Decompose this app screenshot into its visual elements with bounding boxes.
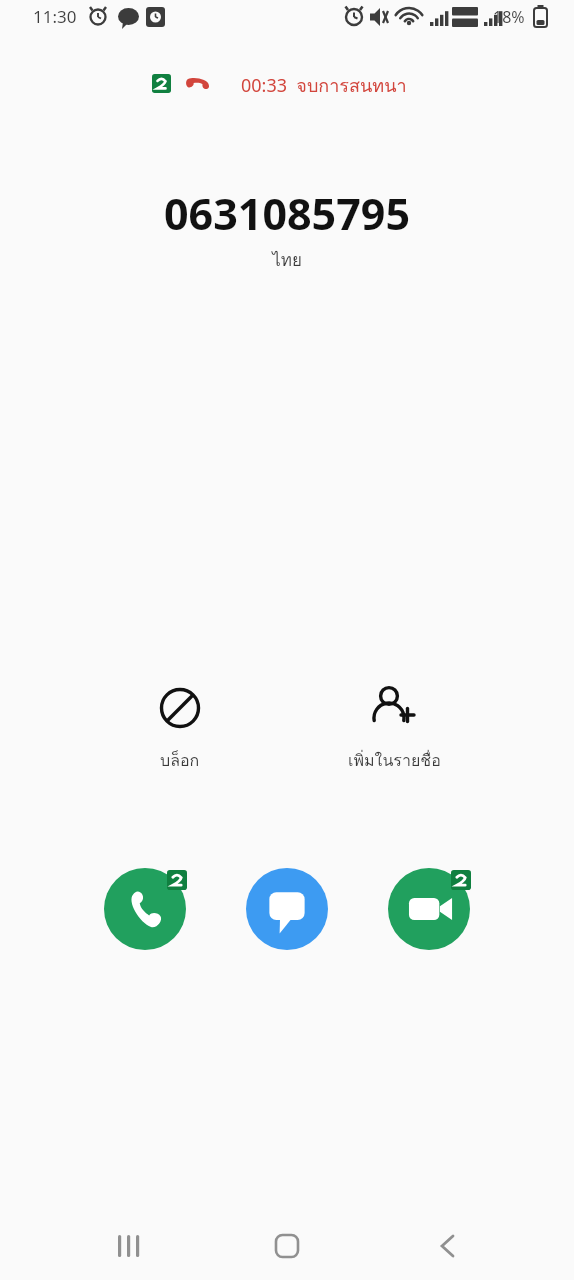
button[interactable]: Block [125,678,235,773]
button[interactable]: 00:33 จบการสนทนา [0,68,574,102]
button[interactable]: Call [104,868,186,950]
button[interactable]: Video call [388,868,470,950]
staticText: 11:30 [33,5,77,28]
button[interactable]: Home [247,1216,327,1276]
staticText: บล็อก [160,748,200,773]
button[interactable]: Back [407,1216,487,1276]
staticText: เพิ่มในรายชื่อ [348,748,441,773]
button[interactable]: Recents [87,1216,167,1276]
button[interactable]: Message [246,868,328,950]
staticText: 00:33 จบการสนทนา [241,71,407,100]
button[interactable]: Add to contacts [320,678,468,773]
staticText: 18% [493,6,525,28]
staticText: ไทย [0,246,574,273]
staticText: 0631085795 [0,184,574,243]
